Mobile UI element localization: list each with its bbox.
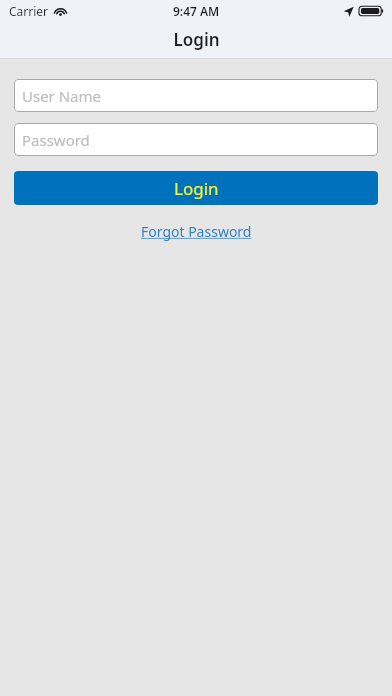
staticText: Login xyxy=(174,177,219,200)
staticText: User Name xyxy=(22,86,102,106)
button[interactable]: Password xyxy=(14,123,378,156)
staticText: 9:47 AM xyxy=(173,3,220,19)
staticText: Login xyxy=(173,28,220,51)
staticText: Password xyxy=(22,130,90,150)
button[interactable]: Login xyxy=(14,171,378,205)
staticText: Forgot Password xyxy=(141,222,252,241)
button[interactable]: User Name xyxy=(14,79,378,112)
staticText: Carrier xyxy=(9,3,49,19)
button[interactable]: Forgot Password xyxy=(135,219,258,244)
